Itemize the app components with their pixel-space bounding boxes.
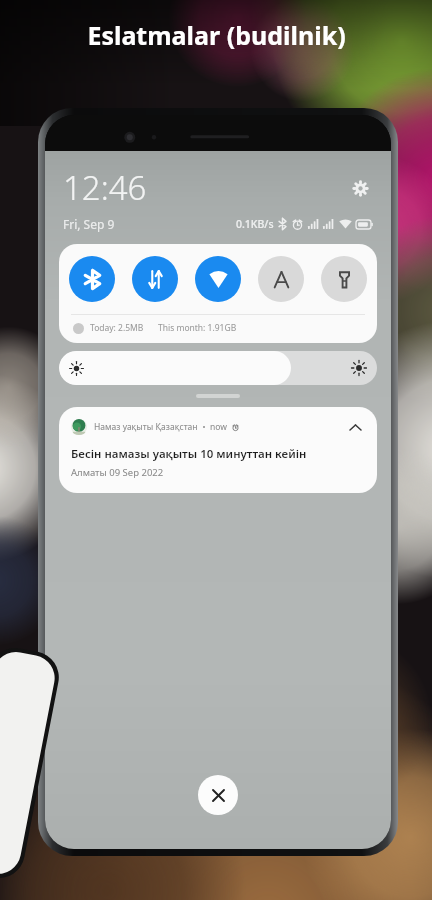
- staticText: Eslatmalar (budilnik): [87, 18, 346, 52]
- staticText: Бесін намазы уақыты 10 минуттан кейін: [71, 446, 307, 462]
- button[interactable]: Намаз уақыты Қазақстан: [59, 407, 377, 493]
- staticText: Намаз уақыты Қазақстан: [94, 421, 198, 433]
- staticText: Алматы 09 Sep 2022: [71, 466, 164, 479]
- button[interactable]: Collapse: [345, 417, 365, 437]
- staticText: Fri, Sep 9: [63, 216, 115, 232]
- button[interactable]: [196, 394, 240, 398]
- button[interactable]: Settings: [347, 175, 373, 201]
- button[interactable]: Wi-Fi: [195, 256, 241, 302]
- button[interactable]: Auto brightness: [258, 256, 304, 302]
- staticText: 12:46: [63, 165, 147, 210]
- button[interactable]: Close: [198, 775, 238, 815]
- button[interactable]: Bluetooth: [69, 256, 115, 302]
- button[interactable]: [59, 351, 377, 385]
- staticText: 0.1KB/s: [236, 217, 274, 231]
- staticText: This month: 1.91GB: [158, 322, 237, 334]
- button[interactable]: Mobile data: [132, 256, 178, 302]
- staticText: Today: 2.5MB: [90, 322, 144, 334]
- button[interactable]: Flashlight: [321, 256, 367, 302]
- staticText: now: [210, 421, 227, 433]
